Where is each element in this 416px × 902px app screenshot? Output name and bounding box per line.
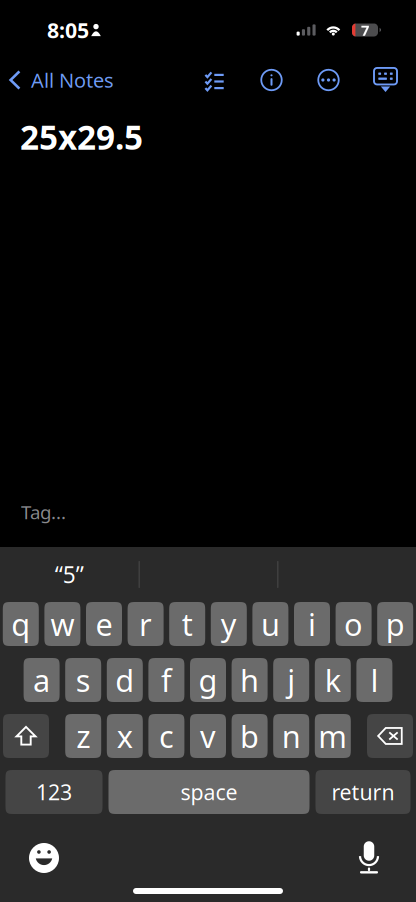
- staticText: r: [139, 603, 152, 645]
- staticText: m: [318, 715, 347, 757]
- staticText: “5”: [55, 559, 84, 590]
- button[interactable]: q: [3, 602, 39, 646]
- button[interactable]: b: [232, 714, 268, 758]
- staticText: c: [159, 715, 174, 757]
- staticText: a: [33, 659, 50, 701]
- button[interactable]: j: [273, 658, 309, 702]
- staticText: s: [76, 659, 91, 701]
- button[interactable]: l: [356, 658, 392, 702]
- button[interactable]: space: [108, 770, 309, 814]
- staticText: b: [240, 715, 259, 757]
- button[interactable]: g: [190, 658, 226, 702]
- button[interactable]: f: [148, 658, 184, 702]
- button[interactable]: i: [294, 602, 330, 646]
- staticText: g: [198, 659, 217, 701]
- button[interactable]: “5”: [0, 552, 139, 596]
- button[interactable]: return: [315, 770, 410, 814]
- button[interactable]: Tag...: [0, 501, 416, 547]
- button[interactable]: r: [128, 602, 164, 646]
- button[interactable]: d: [107, 658, 143, 702]
- button[interactable]: v: [190, 714, 226, 758]
- button[interactable]: All Notes: [0, 58, 120, 102]
- button[interactable]: u: [252, 602, 288, 646]
- staticText: n: [282, 715, 301, 757]
- button[interactable]: m: [315, 714, 351, 758]
- button[interactable]: Shift: [3, 714, 49, 758]
- staticText: j: [287, 659, 295, 701]
- staticText: v: [200, 715, 216, 757]
- staticText: d: [115, 659, 134, 701]
- staticText: Tag...: [21, 499, 66, 525]
- button[interactable]: k: [315, 658, 351, 702]
- staticText: q: [11, 603, 30, 645]
- staticText: u: [261, 603, 280, 645]
- button[interactable]: s: [65, 658, 101, 702]
- staticText: t: [182, 603, 193, 645]
- staticText: h: [240, 659, 259, 701]
- staticText: space: [180, 777, 237, 807]
- button[interactable]: o: [336, 602, 372, 646]
- staticText: i: [308, 603, 316, 645]
- button[interactable]: Emoji: [22, 836, 66, 880]
- staticText: k: [325, 659, 341, 701]
- staticText: e: [95, 603, 112, 645]
- staticText: f: [161, 659, 172, 701]
- button[interactable]: Dictation: [347, 836, 391, 880]
- button[interactable]: t: [169, 602, 205, 646]
- staticText: 7: [361, 20, 369, 40]
- button[interactable]: p: [377, 602, 413, 646]
- button[interactable]: c: [148, 714, 184, 758]
- staticText: o: [344, 603, 363, 645]
- staticText: p: [386, 603, 405, 645]
- button[interactable]: a: [24, 658, 60, 702]
- staticText: y: [221, 603, 237, 645]
- staticText: x: [117, 715, 133, 757]
- button[interactable]: z: [65, 714, 101, 758]
- staticText: 123: [36, 777, 72, 807]
- button[interactable]: Checklist: [192, 58, 237, 102]
- staticText: return: [331, 777, 394, 807]
- button[interactable]: w: [44, 602, 80, 646]
- staticText: l: [370, 659, 378, 701]
- button[interactable]: Info: [249, 58, 294, 102]
- button[interactable]: x: [107, 714, 143, 758]
- button[interactable]: Hide Keyboard: [363, 58, 408, 102]
- button[interactable]: 123: [5, 770, 102, 814]
- button[interactable]: n: [273, 714, 309, 758]
- staticText: z: [76, 715, 90, 757]
- staticText: 25x29.5: [20, 114, 143, 159]
- staticText: 8:05: [47, 15, 89, 45]
- button[interactable]: e: [86, 602, 122, 646]
- button[interactable]: h: [232, 658, 268, 702]
- staticText: All Notes: [31, 66, 114, 94]
- button[interactable]: y: [211, 602, 247, 646]
- button[interactable]: Delete: [367, 714, 413, 758]
- button[interactable]: More: [306, 58, 351, 102]
- staticText: w: [50, 603, 74, 645]
